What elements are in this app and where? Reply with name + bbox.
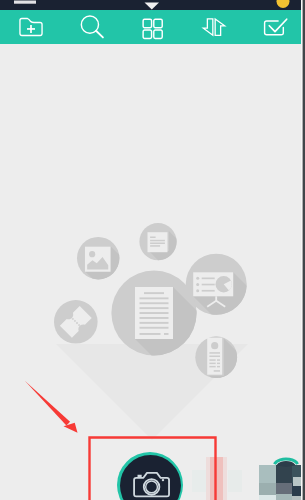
button[interactable]: Search: [61, 10, 122, 44]
button[interactable]: Camera: [117, 452, 183, 500]
button[interactable]: New folder: [0, 10, 61, 44]
button[interactable]: Grid view: [122, 10, 183, 44]
button[interactable]: Select all: [244, 10, 305, 44]
button[interactable]: Sort: [183, 10, 244, 44]
